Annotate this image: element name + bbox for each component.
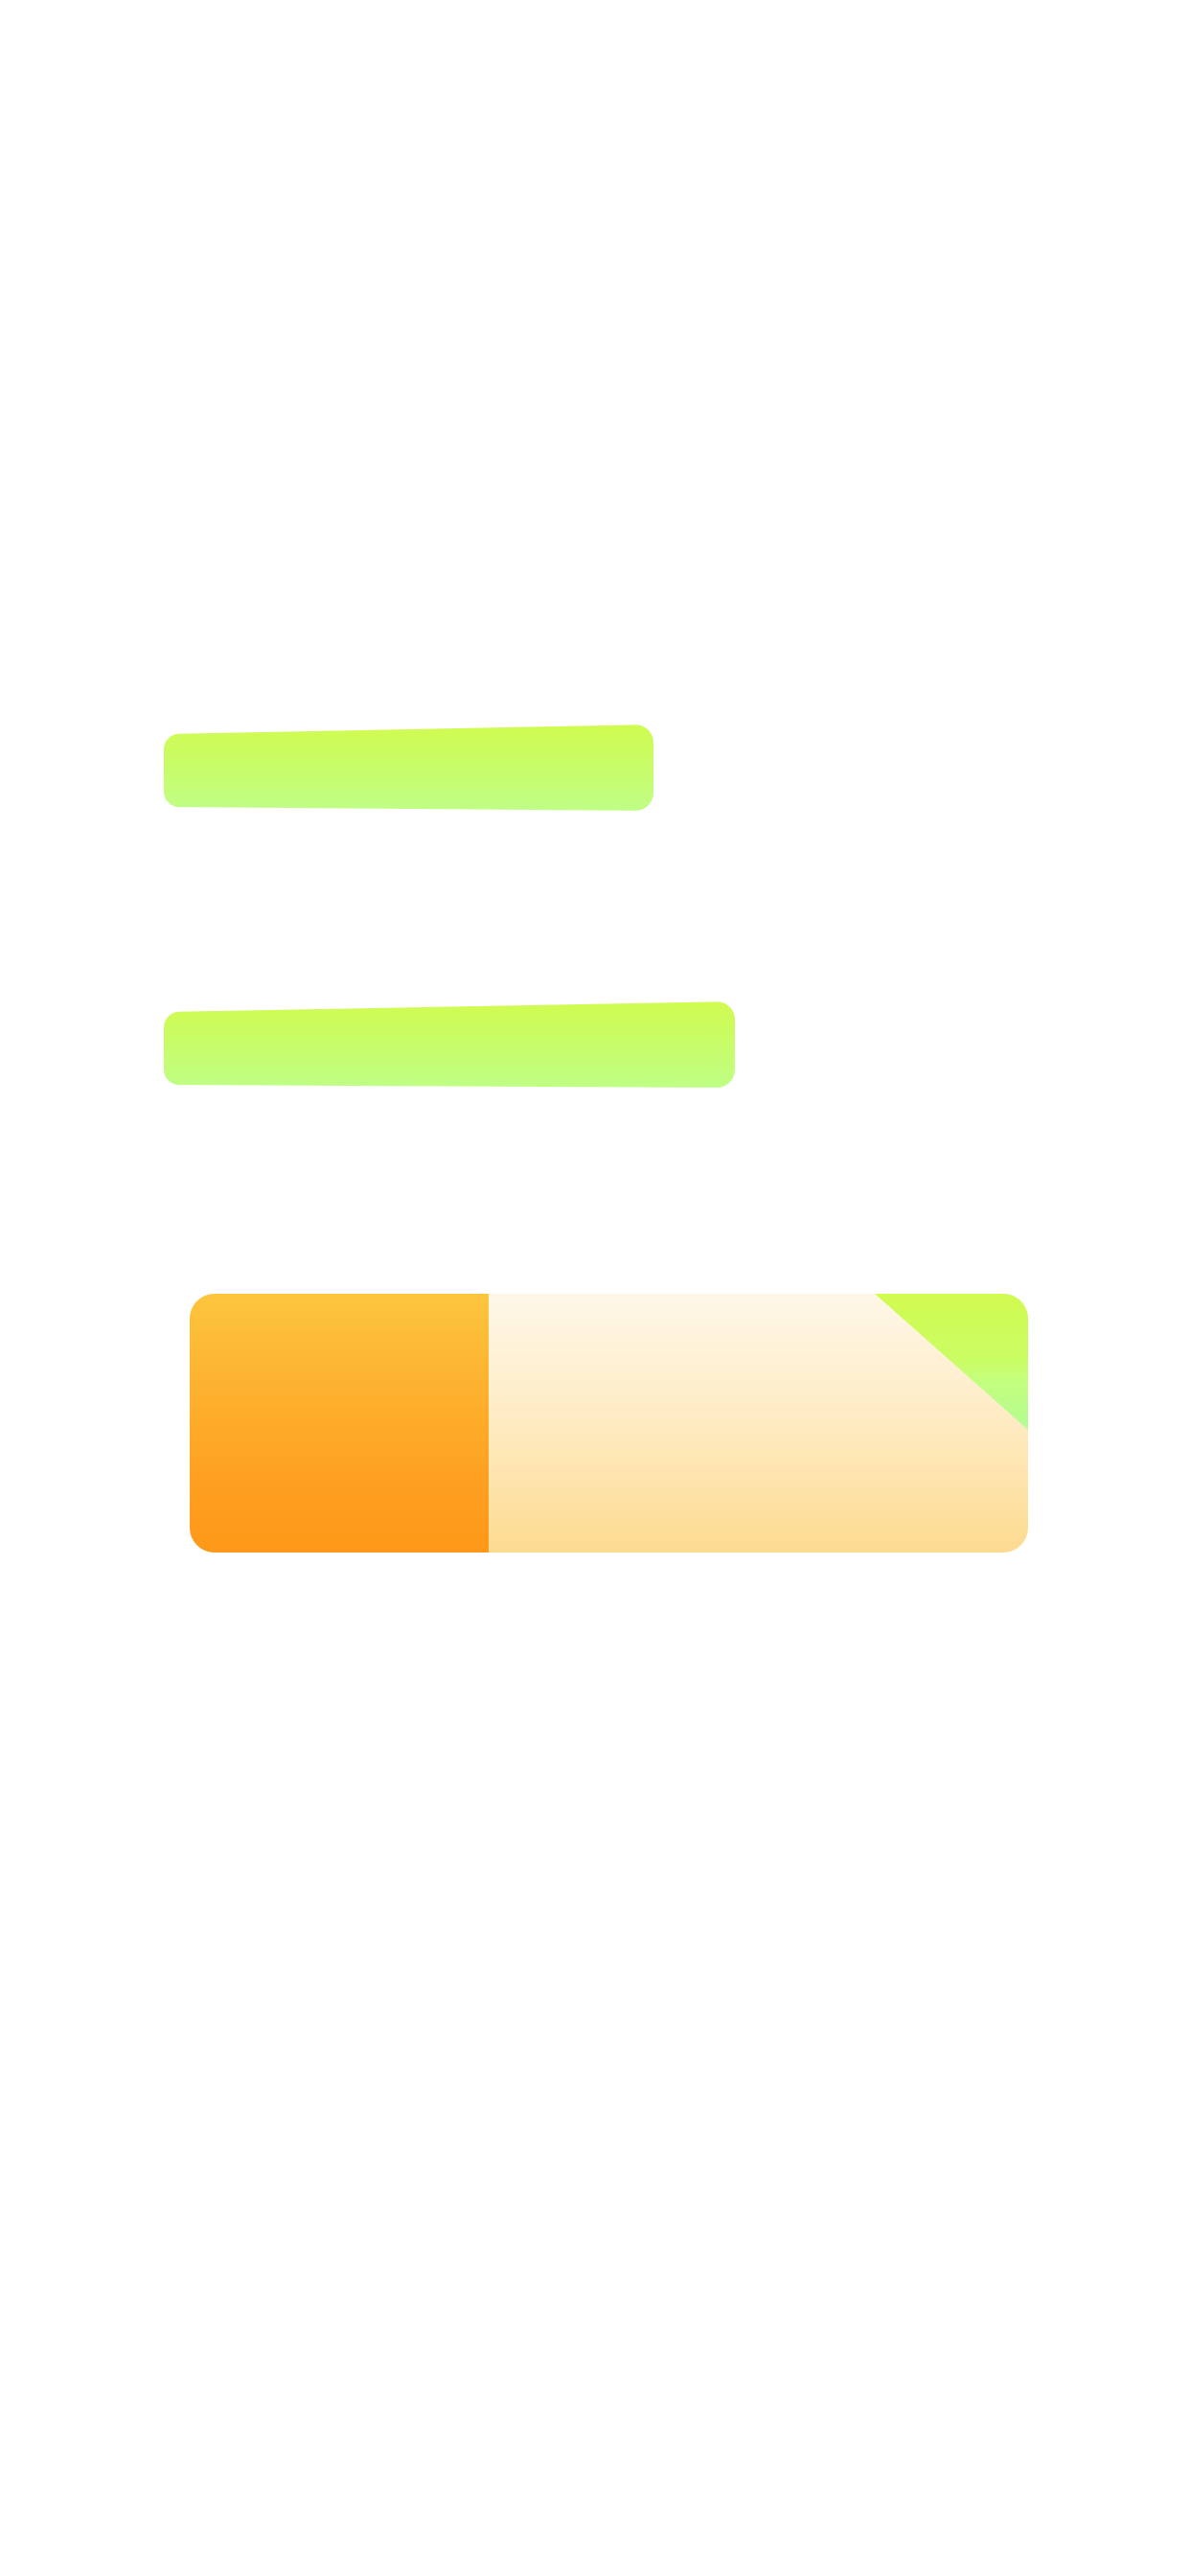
button[interactable]: Featured card — [190, 1294, 1028, 1552]
button[interactable]: Loading headline — [164, 724, 653, 811]
button[interactable]: Loading subtitle — [164, 1001, 735, 1088]
